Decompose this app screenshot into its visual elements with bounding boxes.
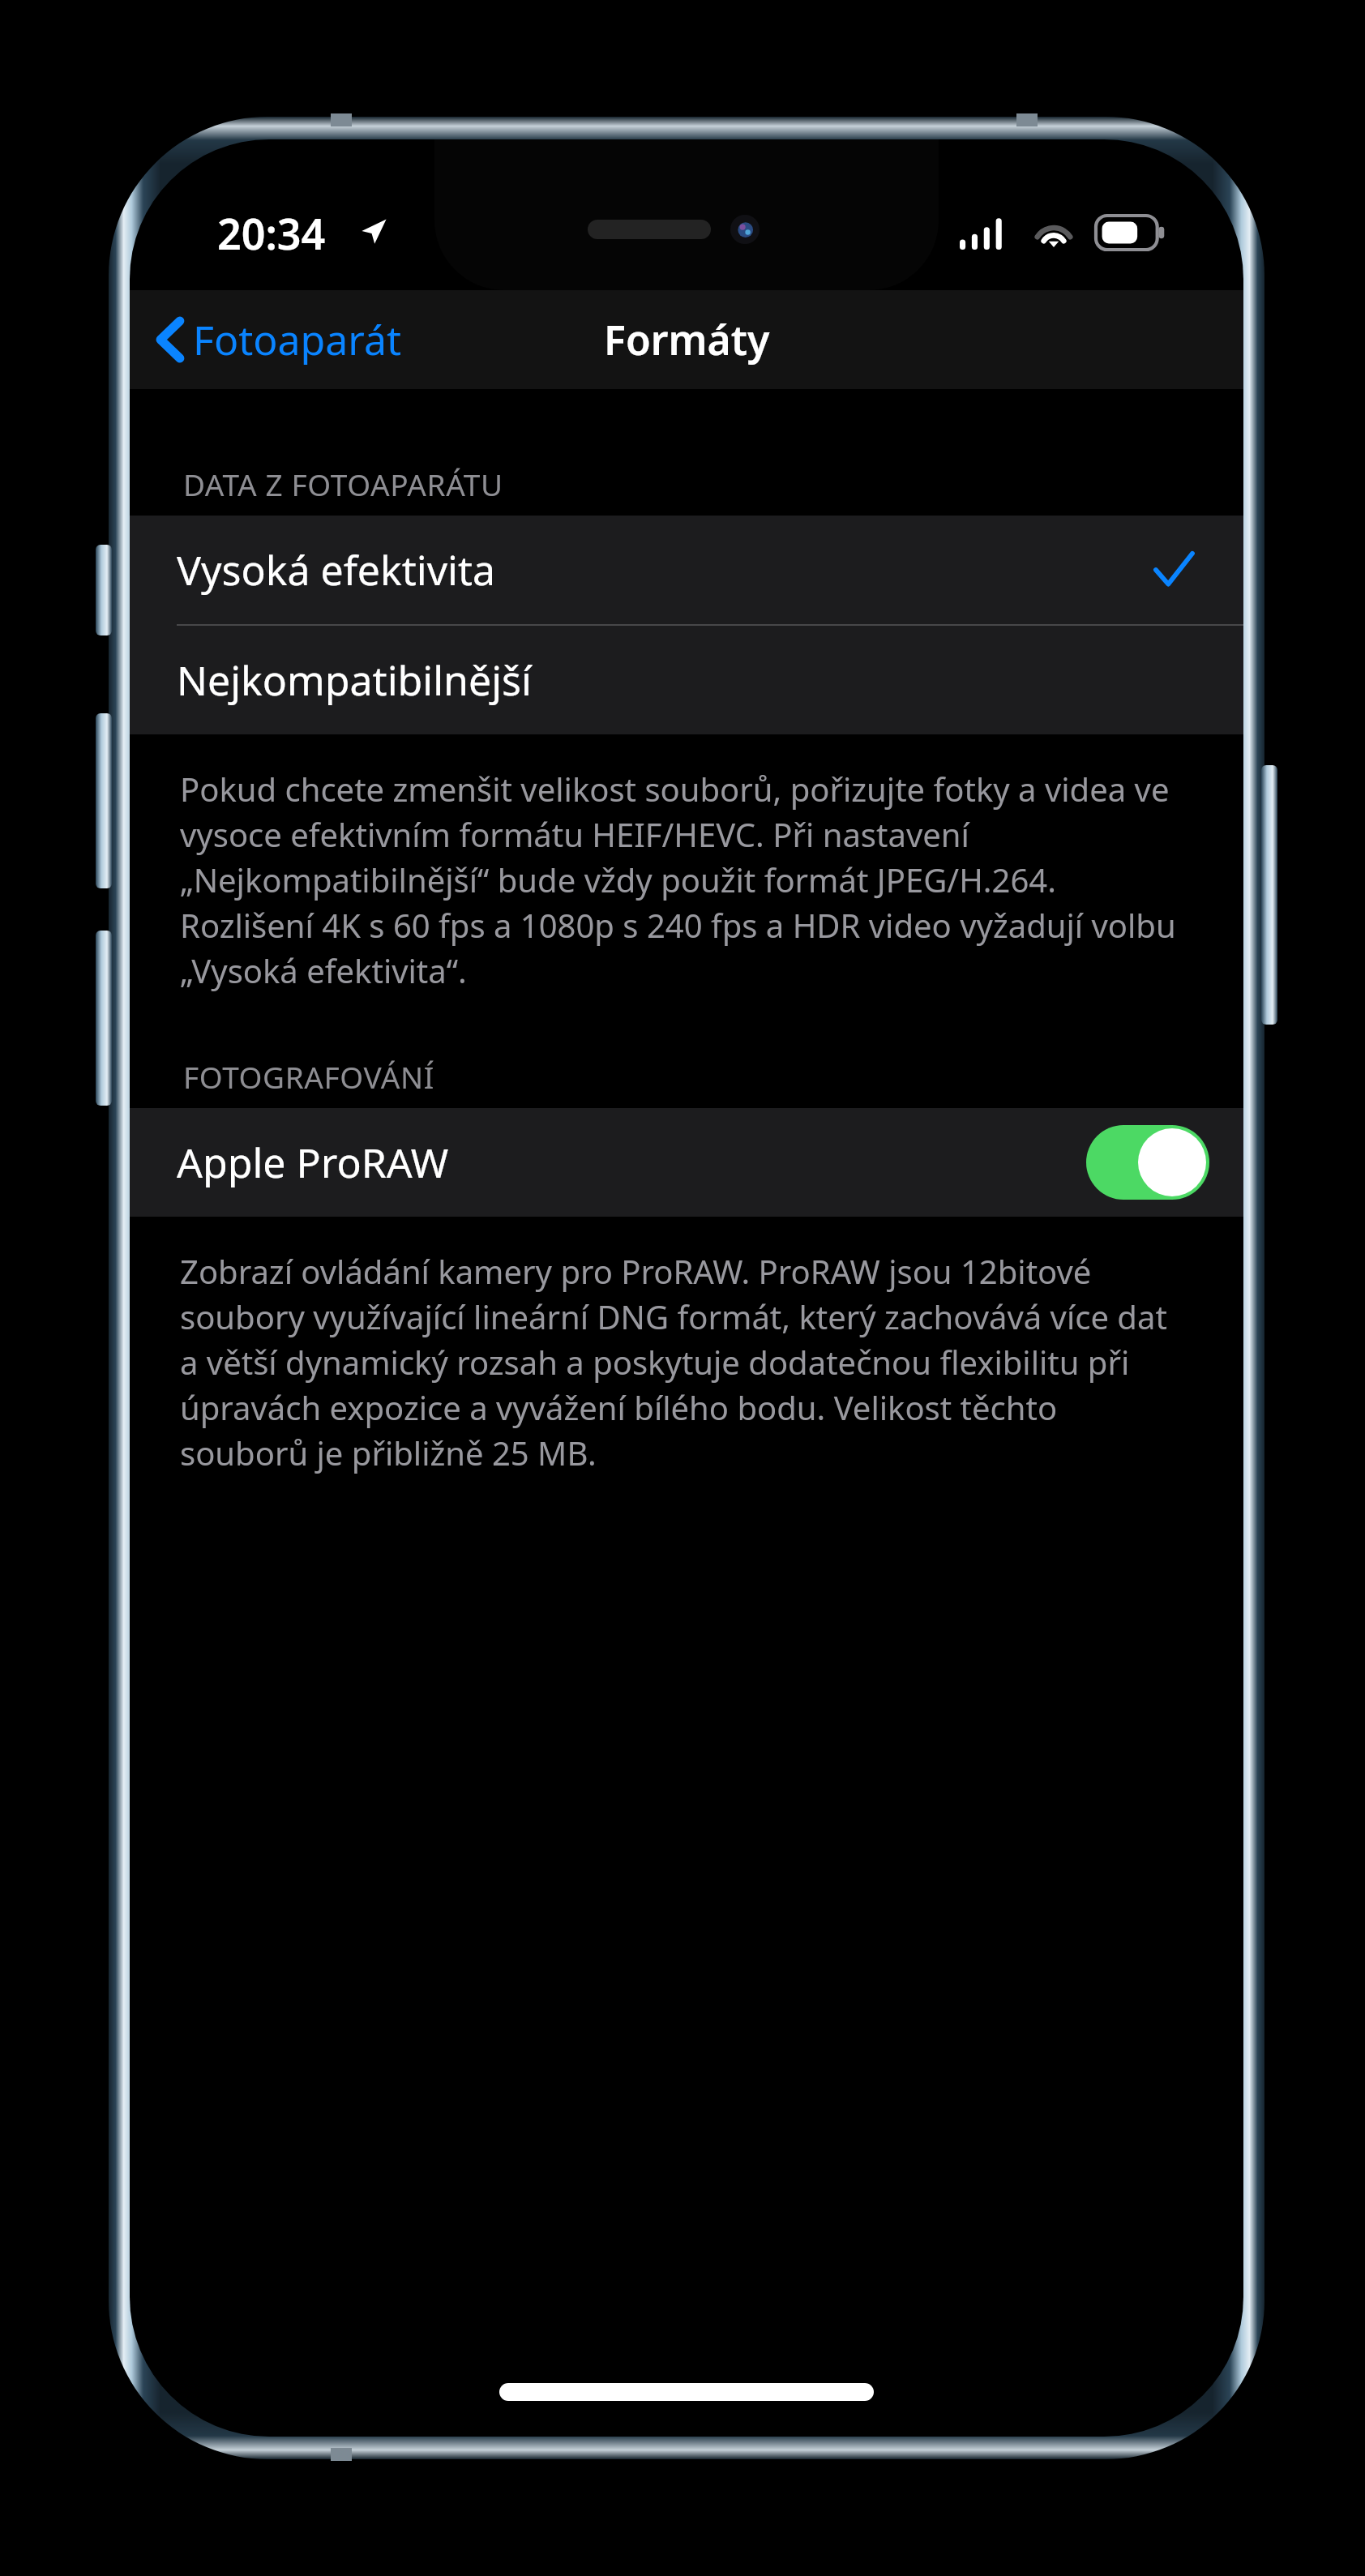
staticText: 20:34 (217, 204, 326, 262)
staticText: Pokud chcete zmenšit velikost souborů, p… (180, 767, 1193, 993)
button[interactable]: Vysoká efektivita (130, 516, 1243, 624)
button[interactable]: Nejkompatibilnější (130, 626, 1243, 734)
button[interactable]: Fotoaparát (151, 301, 412, 379)
staticText: FOTOGRAFOVÁNÍ (183, 1056, 434, 1097)
staticText: Zobrazí ovládání kamery pro ProRAW. ProR… (180, 1249, 1193, 1475)
button[interactable]: Apple ProRAW (130, 1108, 1243, 1217)
staticText: Fotoaparát (193, 312, 402, 367)
staticText: Vysoká efektivita (177, 542, 496, 597)
staticText: DATA Z FOTOAPARÁTU (183, 464, 503, 504)
staticText: Nejkompatibilnější (177, 653, 532, 708)
button[interactable]: Apple ProRAW zapnuto (1086, 1125, 1209, 1200)
staticText: Formáty (604, 312, 770, 367)
staticText: Apple ProRAW (177, 1135, 449, 1190)
